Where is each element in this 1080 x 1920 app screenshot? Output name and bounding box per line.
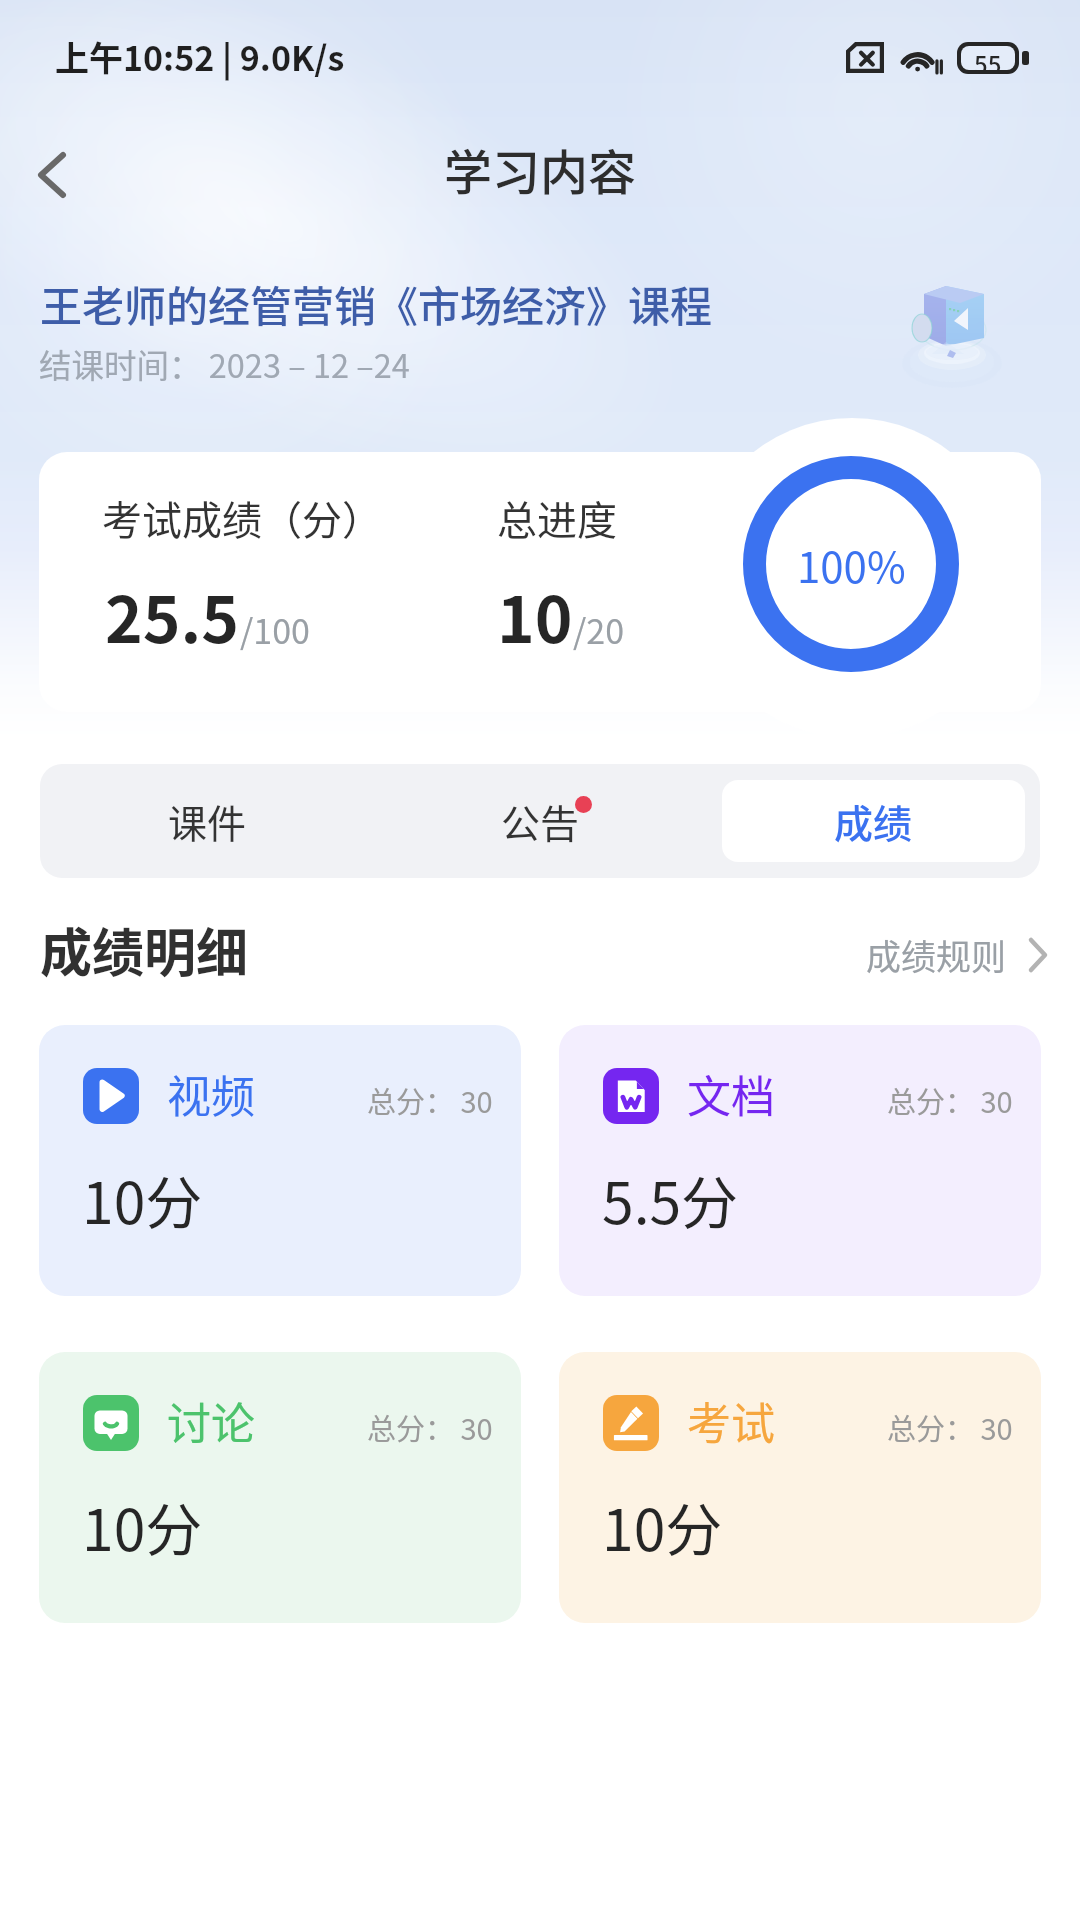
staticText: 上午10:52 | 9.0K/s — [55, 32, 345, 81]
button[interactable]: 讨论 — [39, 1352, 521, 1623]
button[interactable]: 成绩 — [707, 764, 1040, 878]
button[interactable]: 公告 — [374, 764, 707, 878]
staticText: 成绩 — [834, 793, 913, 849]
staticText: 王老师的经管营销《市场经济》课程 — [40, 273, 713, 334]
staticText: 10分 — [82, 1485, 203, 1568]
staticText: 10分 — [602, 1485, 723, 1568]
staticText: 课件 — [168, 793, 247, 849]
staticText: 总进度 — [497, 489, 617, 547]
staticText: /100 — [240, 605, 310, 654]
staticText: 考试成绩（分） — [102, 489, 382, 547]
button[interactable]: 成绩规则 — [866, 929, 1048, 980]
staticText: 55 — [974, 46, 1002, 70]
staticText: 总分： 30 — [367, 1406, 493, 1448]
staticText: 10分 — [82, 1158, 203, 1241]
staticText: 文档 — [687, 1062, 775, 1126]
staticText: 学习内容 — [444, 134, 637, 204]
staticText: 结课时间： 2023 – 12 –24 — [39, 340, 410, 387]
staticText: 总分： 30 — [887, 1406, 1013, 1448]
staticText: 成绩明细 — [40, 912, 249, 987]
button[interactable]: 考试 — [559, 1352, 1041, 1623]
button[interactable]: 文档 — [559, 1025, 1041, 1296]
button[interactable]: 课件 — [40, 764, 374, 878]
button[interactable]: 视频 — [39, 1025, 521, 1296]
staticText: 讨论 — [167, 1389, 255, 1453]
staticText: 总分： 30 — [887, 1079, 1013, 1121]
staticText: 10 — [497, 569, 573, 662]
staticText: 公告 — [501, 793, 580, 849]
staticText: 成绩规则 — [866, 929, 1007, 980]
staticText: 5.5分 — [602, 1158, 739, 1241]
button[interactable]: Back — [6, 129, 98, 221]
staticText: 总分： 30 — [367, 1079, 493, 1121]
staticText: /20 — [573, 605, 625, 654]
staticText: 25.5 — [105, 569, 240, 662]
staticText: 100% — [797, 534, 906, 595]
staticText: 考试 — [687, 1389, 775, 1453]
staticText: 视频 — [167, 1062, 255, 1126]
